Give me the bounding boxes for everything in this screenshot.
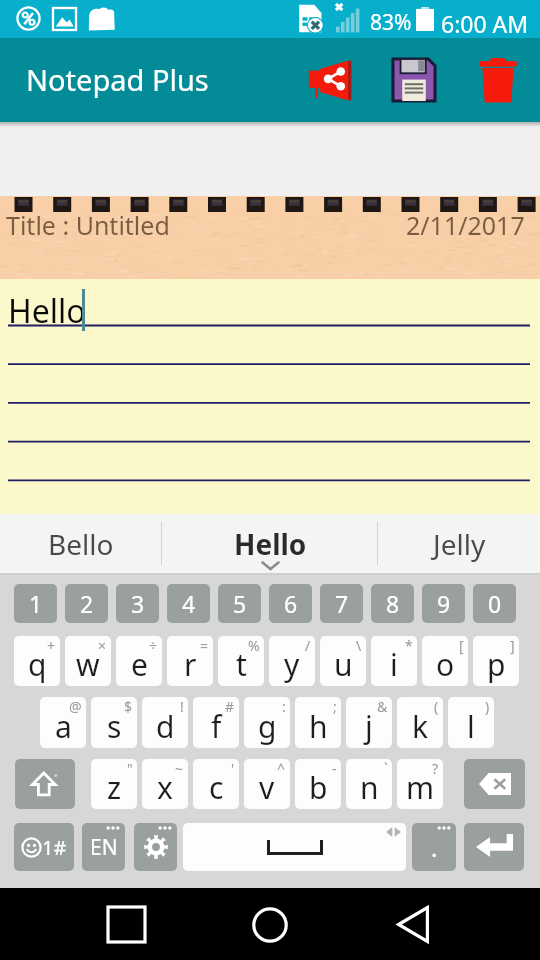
staticText: Hello	[8, 289, 86, 333]
staticText: e	[131, 644, 148, 685]
button[interactable]: /	[269, 636, 315, 686]
button[interactable]: "	[91, 759, 137, 809]
button[interactable]: 9	[422, 584, 465, 623]
button[interactable]: Backspace	[464, 759, 525, 809]
button[interactable]: Back	[382, 895, 443, 954]
staticText: z	[107, 767, 122, 808]
staticText: m	[406, 767, 435, 808]
staticText: 2/11/2017	[406, 208, 525, 242]
button[interactable]: 6	[269, 584, 312, 623]
button[interactable]: [	[422, 636, 468, 686]
staticText: 4	[182, 588, 196, 619]
button[interactable]: 0	[473, 584, 516, 623]
button[interactable]: Recents	[96, 895, 157, 954]
staticText: 9	[437, 588, 451, 619]
staticText: v	[259, 767, 275, 808]
button[interactable]: Enter	[464, 823, 524, 871]
staticText: f	[211, 706, 222, 747]
staticText: u	[334, 644, 353, 685]
button[interactable]: ]	[473, 636, 519, 686]
staticText: 2	[80, 588, 94, 619]
button[interactable]: ×	[65, 636, 111, 686]
button[interactable]: %	[218, 636, 264, 686]
staticText: r	[184, 644, 197, 685]
staticText: i	[390, 644, 398, 685]
staticText: $	[124, 697, 133, 716]
button[interactable]: Home	[239, 895, 300, 954]
staticText: :	[282, 697, 286, 716]
button[interactable]: 2	[65, 584, 108, 623]
staticText: s	[107, 706, 122, 747]
staticText: k	[412, 706, 429, 747]
button[interactable]: .	[412, 823, 456, 871]
button[interactable]: `	[346, 759, 392, 809]
staticText: -	[332, 759, 337, 778]
button[interactable]: 4	[167, 584, 210, 623]
button[interactable]: ?	[397, 759, 443, 809]
staticText: l	[467, 706, 475, 747]
button[interactable]: 5	[218, 584, 261, 623]
button[interactable]: -	[295, 759, 341, 809]
staticText: a	[55, 706, 72, 747]
button[interactable]: 1	[14, 584, 57, 623]
staticText: ÷	[149, 636, 158, 655]
button[interactable]: #	[193, 697, 239, 748]
staticText: d	[156, 706, 175, 747]
button[interactable]: ^	[244, 759, 290, 809]
staticText: ^	[277, 759, 286, 778]
staticText: =	[200, 636, 209, 655]
staticText: Notepad Plus	[26, 60, 209, 99]
staticText: 3	[131, 588, 145, 619]
button[interactable]: $	[91, 697, 137, 748]
button[interactable]: Bello	[0, 514, 162, 575]
staticText: 83%	[370, 8, 412, 37]
button[interactable]: ;	[295, 697, 341, 748]
button[interactable]: ~	[142, 759, 188, 809]
staticText: 0	[488, 588, 502, 619]
button[interactable]: :	[244, 697, 290, 748]
staticText: t	[236, 644, 247, 685]
staticText: 5	[233, 588, 247, 619]
button[interactable]: Space	[183, 823, 406, 871]
staticText: &	[377, 697, 388, 716]
staticText: 6:00 AM	[441, 8, 529, 39]
staticText: Jelly	[433, 525, 486, 563]
staticText: EN	[90, 833, 118, 862]
button[interactable]: &	[346, 697, 392, 748]
button[interactable]: ÷	[116, 636, 162, 686]
staticText: 7	[335, 588, 349, 619]
button[interactable]: Save	[372, 38, 454, 122]
staticText: n	[360, 767, 379, 808]
button[interactable]: \	[320, 636, 366, 686]
button[interactable]: Hello	[162, 514, 378, 575]
staticText: 1	[29, 588, 43, 619]
button[interactable]: Share	[288, 38, 364, 122]
button[interactable]: (	[397, 697, 443, 748]
button[interactable]: @	[40, 697, 86, 748]
staticText: #	[225, 697, 235, 716]
staticText: w	[76, 644, 100, 685]
staticText: Bello	[48, 525, 114, 563]
staticText: o	[436, 644, 455, 685]
staticText: !	[180, 697, 184, 716]
button[interactable]: Language	[82, 823, 125, 871]
staticText: b	[309, 767, 328, 808]
button[interactable]: Delete	[460, 38, 536, 122]
staticText: "	[127, 759, 133, 778]
button[interactable]: +	[14, 636, 60, 686]
button[interactable]: !	[142, 697, 188, 748]
button[interactable]: *	[371, 636, 417, 686]
staticText: ~	[175, 759, 184, 778]
staticText: Hello	[234, 525, 307, 563]
button[interactable]: 3	[116, 584, 159, 623]
button[interactable]: Shift	[15, 759, 75, 809]
button[interactable]: )	[448, 697, 494, 748]
button[interactable]: '	[193, 759, 239, 809]
button[interactable]: Settings	[134, 823, 177, 871]
button[interactable]: 8	[371, 584, 414, 623]
button[interactable]: =	[167, 636, 213, 686]
button[interactable]: Jelly	[378, 514, 540, 575]
button[interactable]: 7	[320, 584, 363, 623]
button[interactable]: Symbols	[14, 823, 74, 871]
staticText: ?	[432, 759, 439, 778]
